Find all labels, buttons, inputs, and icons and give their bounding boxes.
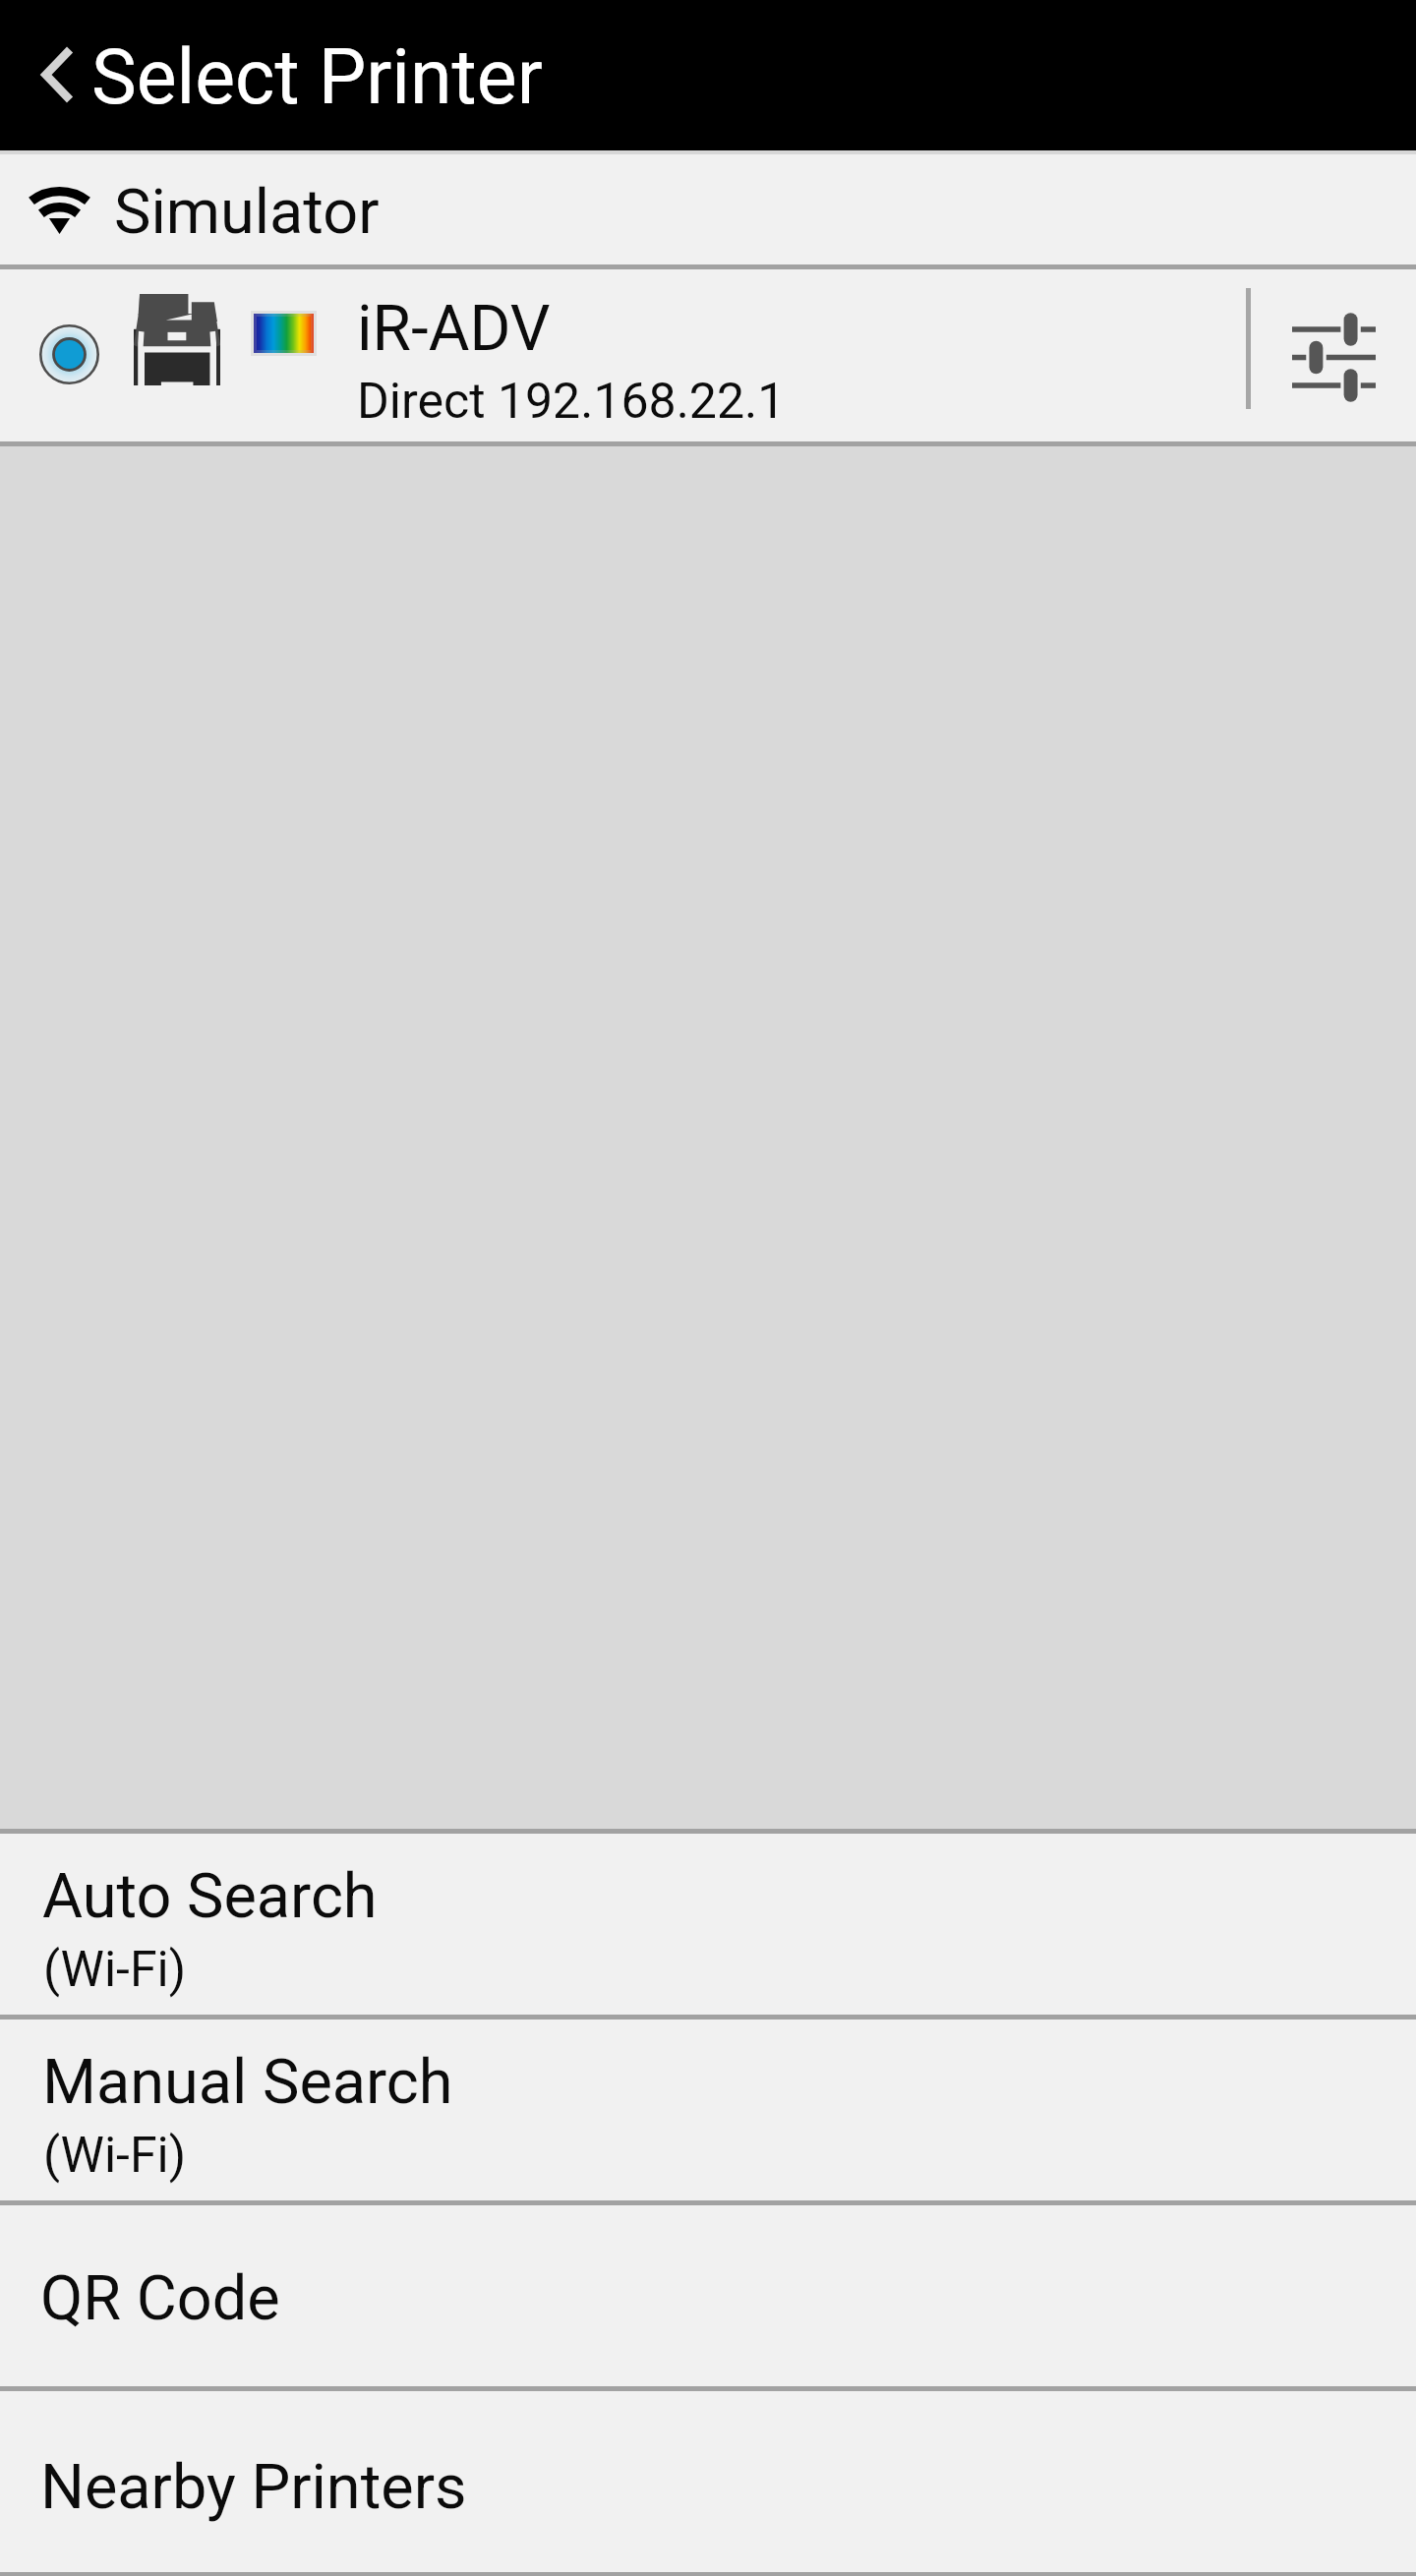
staticText: QR Code [40, 2262, 280, 2335]
button[interactable]: Printer settings [1251, 269, 1416, 441]
button[interactable]: Auto Search [0, 1834, 1416, 2015]
button[interactable]: Manual Search [0, 2020, 1416, 2200]
staticText: iR-ADV [357, 292, 551, 366]
button[interactable]: Back [0, 0, 610, 150]
staticText: (Wi-Fi) [43, 2127, 187, 2185]
staticText: Select Printer [91, 33, 543, 122]
button[interactable]: QR Code [0, 2205, 1416, 2386]
staticText: Direct 192.168.22.1 [357, 373, 786, 431]
staticText: Manual Search [42, 2046, 453, 2119]
staticText: Simulator [114, 176, 380, 249]
staticText: Auto Search [42, 1860, 378, 1933]
button[interactable]: iR-ADV [0, 269, 1416, 441]
staticText: Nearby Printers [40, 2451, 467, 2524]
button[interactable]: Nearby Printers [0, 2391, 1416, 2572]
staticText: (Wi-Fi) [43, 1941, 187, 1999]
